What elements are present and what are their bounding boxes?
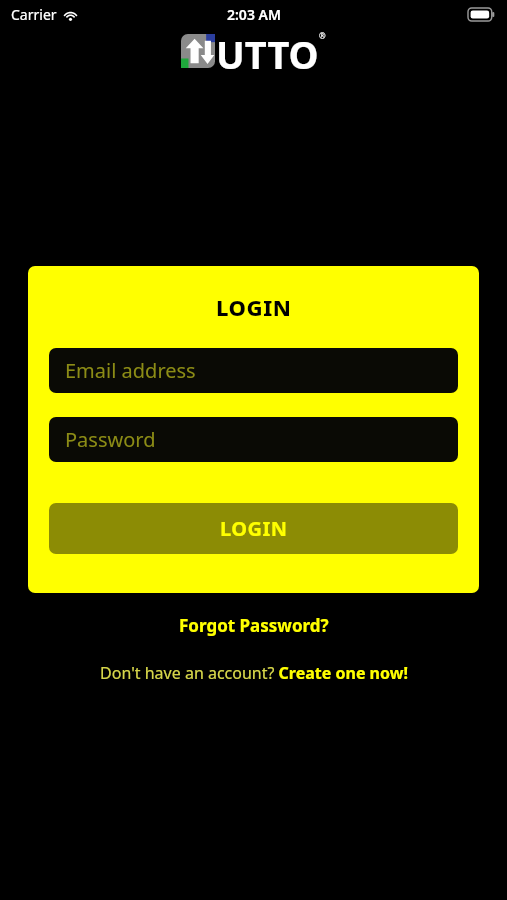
button[interactable]: Email address bbox=[49, 348, 458, 393]
staticText: ® bbox=[319, 30, 326, 41]
staticText: 2:03 AM bbox=[227, 5, 281, 24]
button[interactable]: Password bbox=[49, 417, 458, 462]
staticText: LOGIN bbox=[220, 515, 288, 542]
staticText: UTTO bbox=[216, 28, 319, 80]
button[interactable]: Don't have an account? Create one now! bbox=[88, 658, 420, 688]
staticText: Email address bbox=[65, 357, 196, 384]
button[interactable]: Forgot Password? bbox=[167, 610, 341, 641]
staticText: Forgot Password? bbox=[179, 614, 329, 637]
staticText: LOGIN bbox=[216, 292, 292, 322]
button[interactable]: LOGIN bbox=[49, 503, 458, 554]
staticText: Carrier bbox=[11, 5, 57, 24]
staticText: Password bbox=[65, 426, 156, 453]
staticText: Don't have an account? Create one now! bbox=[100, 662, 408, 684]
